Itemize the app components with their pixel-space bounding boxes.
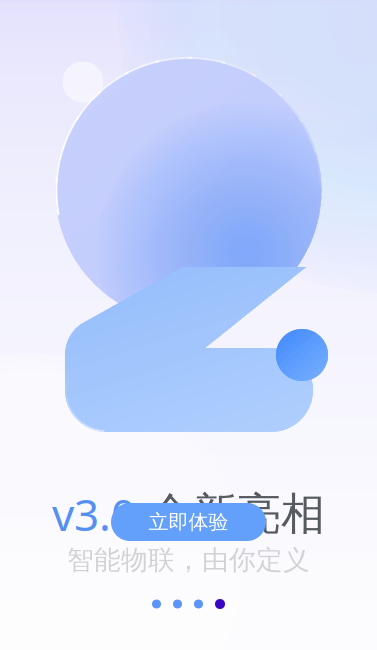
staticText: 智能物联，由你定义: [67, 544, 310, 576]
button[interactable]: 立即体验: [111, 503, 266, 541]
staticText: v3.0: [52, 485, 136, 543]
staticText: 全新亮相: [136, 487, 325, 541]
staticText: 立即体验: [148, 510, 228, 534]
